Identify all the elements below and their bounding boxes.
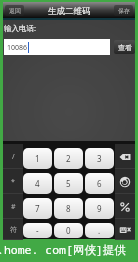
button[interactable]: Backspace — [115, 144, 135, 169]
button[interactable]: 9 — [85, 198, 114, 219]
button[interactable]: key 符 — [3, 219, 23, 240]
staticText: 生成二维码 — [48, 6, 91, 17]
staticText: 保存 — [118, 7, 130, 15]
staticText: 返回 — [9, 7, 21, 15]
button[interactable]: 返回 — [5, 5, 24, 16]
button[interactable]: key * — [3, 169, 23, 194]
staticText: 9 — [97, 203, 102, 214]
button[interactable]: Symbols — [115, 194, 135, 219]
staticText: 查看 — [118, 43, 132, 52]
staticText: 7 — [35, 203, 40, 214]
staticText: .home. com[网侠]提供 — [0, 242, 126, 258]
staticText: 2 — [66, 153, 71, 164]
staticText: 1 — [35, 153, 40, 164]
staticText: 3 — [97, 153, 102, 164]
staticText: * — [11, 177, 15, 187]
button[interactable]: 8 — [54, 198, 83, 219]
button[interactable]: - — [23, 223, 52, 238]
button[interactable]: 保存 — [114, 5, 133, 16]
staticText: 6 — [97, 178, 102, 189]
button[interactable]: 6 — [85, 173, 114, 194]
staticText: 5 — [66, 178, 71, 189]
button[interactable]: 查看 — [114, 40, 135, 54]
button[interactable]: 2 — [54, 148, 83, 169]
button[interactable]: 10086 — [4, 39, 110, 55]
button[interactable]: key # — [3, 194, 23, 219]
staticText: 0 — [66, 225, 71, 236]
button[interactable]: key / — [3, 144, 23, 169]
button[interactable]: 0 — [54, 223, 83, 238]
staticText: - — [36, 225, 39, 236]
button[interactable]: 4 — [23, 173, 52, 194]
staticText: # — [11, 202, 16, 212]
button[interactable]: Voice — [115, 219, 135, 240]
staticText: 10086 — [7, 43, 28, 53]
button[interactable]: Emoji — [115, 169, 135, 194]
button[interactable]: 3 — [85, 148, 114, 169]
staticText: / — [12, 152, 15, 162]
button[interactable]: . — [85, 223, 114, 238]
staticText: 8 — [66, 203, 71, 214]
button[interactable]: 5 — [54, 173, 83, 194]
staticText: 符 — [10, 225, 17, 234]
staticText: 输入电话: — [4, 23, 37, 33]
button[interactable]: 1 — [23, 148, 52, 169]
button[interactable]: 7 — [23, 198, 52, 219]
staticText: 4 — [35, 178, 40, 189]
staticText: . — [98, 225, 101, 236]
